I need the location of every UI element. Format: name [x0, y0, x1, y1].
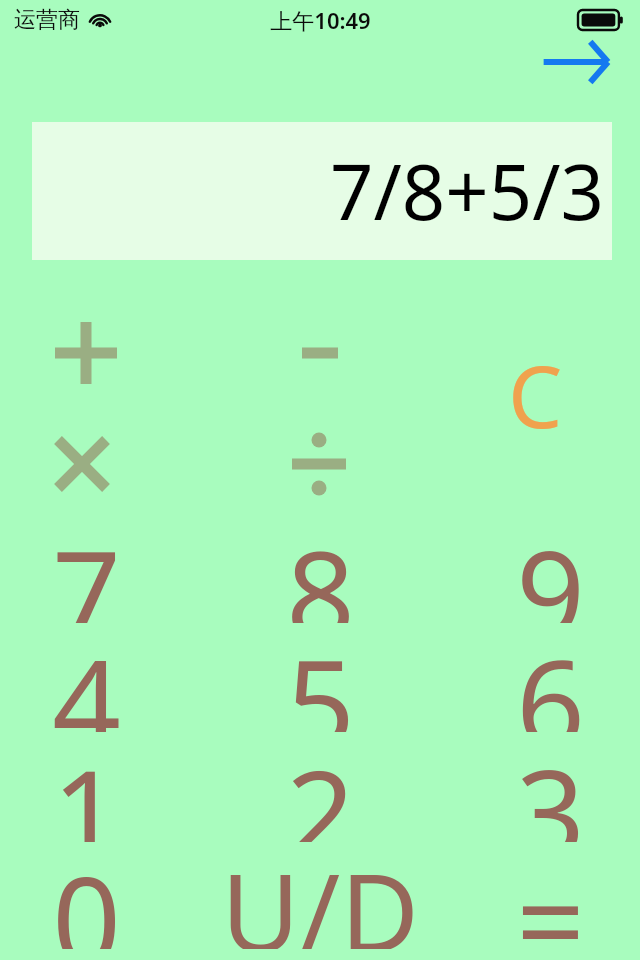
button[interactable]: 3 [475, 730, 625, 842]
button[interactable]: Minus [260, 299, 380, 407]
button[interactable]: Plus [26, 299, 146, 407]
button[interactable]: 6 [475, 620, 625, 732]
button[interactable]: C [475, 336, 595, 444]
staticText: 9 [516, 511, 585, 623]
button[interactable]: 2 [245, 730, 395, 842]
staticText: 0 [52, 837, 121, 949]
staticText: 4 [52, 620, 121, 732]
button[interactable]: U/D [205, 837, 435, 949]
button[interactable]: 7/8+5/3 [32, 122, 612, 260]
staticText: 2 [286, 730, 355, 842]
staticText: = [516, 837, 585, 949]
button[interactable]: 4 [11, 620, 161, 732]
staticText: 8 [286, 511, 355, 623]
staticText: 1 [52, 730, 121, 842]
staticText: 6 [516, 620, 585, 732]
button[interactable]: = [475, 837, 625, 949]
staticText: 5 [286, 620, 355, 732]
staticText: U/D [221, 837, 419, 949]
staticText: 3 [516, 730, 585, 842]
button[interactable]: 8 [245, 511, 395, 623]
button[interactable]: Multiply [22, 414, 142, 514]
staticText: C [508, 336, 563, 444]
staticText: 运营商 [14, 6, 80, 34]
staticText: 7/8+5/3 [330, 139, 604, 243]
button[interactable]: Divide [259, 414, 379, 514]
button[interactable]: 1 [11, 730, 161, 842]
button[interactable]: Forward [528, 38, 620, 86]
staticText: 上午10:49 [270, 5, 371, 35]
staticText: 7 [52, 511, 121, 623]
button[interactable]: 5 [245, 620, 395, 732]
button[interactable]: 9 [475, 511, 625, 623]
button[interactable]: 7 [11, 511, 161, 623]
button[interactable]: 0 [11, 837, 161, 949]
